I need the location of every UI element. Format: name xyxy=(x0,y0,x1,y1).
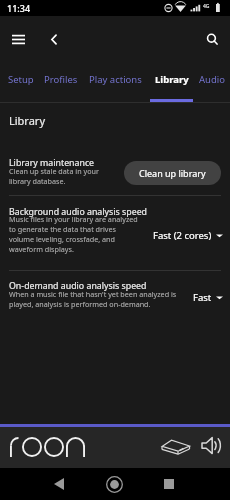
button[interactable]: Home xyxy=(101,471,127,497)
staticText: Clean up stale data in your library data… xyxy=(9,166,117,186)
staticText: Audio xyxy=(199,73,225,86)
button[interactable]: Menu xyxy=(5,26,31,52)
button[interactable]: Setup xyxy=(2,62,40,102)
button[interactable]: Fast xyxy=(193,291,223,304)
button[interactable]: Recents xyxy=(156,471,182,497)
staticText: Play actions xyxy=(89,73,142,86)
button[interactable]: Library xyxy=(150,62,193,102)
button[interactable]: Profiles xyxy=(40,62,81,102)
button[interactable]: Clean up library xyxy=(124,161,221,185)
staticText: 4G xyxy=(203,3,210,10)
staticText: Setup xyxy=(8,73,34,86)
staticText: On-demand audio analysis speed xyxy=(9,280,147,292)
staticText: Fast (2 cores) xyxy=(153,229,212,242)
button[interactable]: Volume xyxy=(198,436,224,459)
button[interactable]: Fast (2 cores) xyxy=(153,229,223,242)
staticText: Fast xyxy=(193,291,212,304)
staticText: Library maintenance xyxy=(9,157,95,169)
button[interactable]: Play actions xyxy=(81,62,150,102)
staticText: Music files in your library are analyzed… xyxy=(9,214,141,254)
other: roon xyxy=(8,435,88,461)
staticText: Profiles xyxy=(44,73,78,86)
button[interactable]: Back xyxy=(41,26,67,52)
staticText: Background audio analysis speed xyxy=(9,206,147,218)
button[interactable]: Zone xyxy=(158,437,194,459)
button[interactable]: Search xyxy=(199,26,225,52)
staticText: Clean up library xyxy=(139,167,206,179)
staticText: When a music file that hasn't yet been a… xyxy=(9,289,189,309)
staticText: 11:34 xyxy=(7,2,31,14)
button[interactable]: Back xyxy=(46,471,72,497)
button[interactable]: Audio xyxy=(193,62,230,102)
staticText: Library xyxy=(155,73,189,86)
staticText: Library xyxy=(9,113,46,128)
